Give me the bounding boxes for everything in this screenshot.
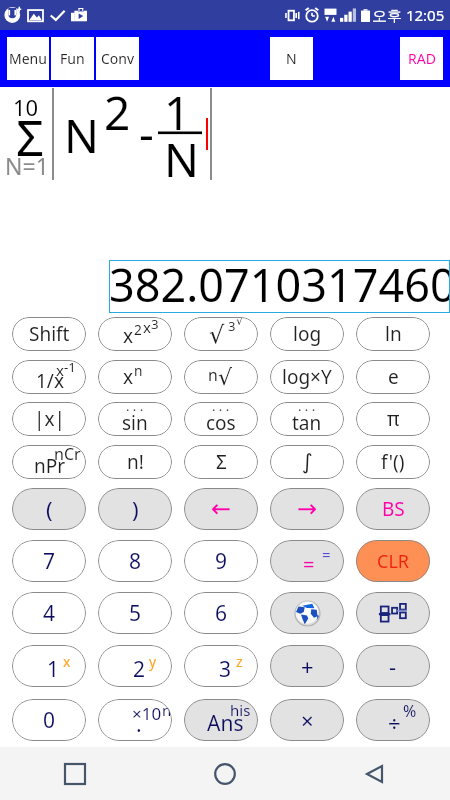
button[interactable]: . (98, 699, 172, 741)
button[interactable]: + (270, 645, 344, 687)
staticText: N=1 (5, 150, 49, 181)
staticText: Σ (16, 104, 45, 171)
staticText: sin (122, 410, 148, 436)
staticText: 5 (129, 599, 142, 628)
staticText: Σ (216, 449, 227, 475)
staticText: y (149, 652, 157, 671)
staticText: x (56, 360, 64, 380)
button[interactable]: ( (12, 488, 86, 530)
button[interactable]: Shift (12, 317, 86, 351)
button[interactable]: log (270, 317, 344, 351)
button[interactable] (270, 592, 344, 634)
staticText: x (63, 652, 71, 671)
staticText: cos (206, 410, 236, 436)
button[interactable]: ∫ (270, 445, 344, 479)
button[interactable]: N (270, 37, 313, 80)
staticText: BS (382, 496, 405, 522)
staticText: = (322, 544, 331, 564)
button[interactable]: nPr (12, 445, 86, 479)
button[interactable]: 8 (98, 540, 172, 582)
staticText: RAD (408, 49, 436, 68)
staticText: · · · (298, 402, 316, 419)
button[interactable]: × (270, 699, 344, 741)
staticText: f'() (381, 449, 405, 475)
staticText: 2 (133, 655, 146, 684)
staticText: CLR (377, 549, 410, 574)
staticText: Menu (9, 49, 47, 68)
button[interactable]: cos (184, 402, 258, 436)
button[interactable]: CLR (356, 540, 430, 582)
staticText: N (286, 49, 297, 68)
button[interactable]: x (98, 360, 172, 394)
staticText: Conv (101, 49, 135, 68)
staticText: 3 (219, 655, 232, 684)
button[interactable]: 9 (184, 540, 258, 582)
button[interactable]: 3 (184, 645, 258, 687)
button[interactable]: 4 (12, 592, 86, 634)
button[interactable]: Ans (184, 699, 258, 741)
staticText: ÷ (388, 708, 401, 738)
button[interactable]: 7 (12, 540, 86, 582)
staticText: 1 (47, 655, 60, 684)
staticText: log×Y (282, 364, 332, 390)
button[interactable]: Fun (51, 37, 94, 80)
staticText: ( (46, 494, 53, 524)
button[interactable]: Home (150, 747, 300, 800)
button[interactable]: π (356, 402, 430, 436)
button[interactable]: 1/x (12, 360, 86, 394)
button[interactable]: e (356, 360, 430, 394)
staticText: Ans (207, 709, 244, 738)
staticText: nCr (54, 445, 81, 465)
button[interactable]: log×Y (270, 360, 344, 394)
button[interactable]: Menu (7, 37, 49, 80)
button[interactable]: → (270, 488, 344, 530)
button[interactable]: 0 (12, 699, 86, 741)
button[interactable]: sin (98, 402, 172, 436)
button[interactable]: f'() (356, 445, 430, 479)
button[interactable]: ) (98, 488, 172, 530)
staticText: 3 (228, 317, 236, 335)
button[interactable]: |x| (12, 402, 86, 436)
button[interactable]: 1 (12, 645, 86, 687)
staticText: 4 (43, 599, 56, 628)
staticText: - (389, 651, 397, 681)
button[interactable]: RAD (400, 37, 443, 80)
button[interactable]: 2 (98, 645, 172, 687)
staticText: 7 (43, 547, 56, 576)
button[interactable]: Recent apps (0, 747, 150, 800)
button[interactable]: √ (184, 317, 258, 351)
staticText: 0 (43, 706, 56, 735)
button[interactable]: - (356, 645, 430, 687)
staticText: 382.0710317460 (109, 254, 450, 307)
button[interactable]: n! (98, 445, 172, 479)
button[interactable] (356, 592, 430, 634)
button[interactable]: ln (356, 317, 430, 351)
button[interactable]: 6 (184, 592, 258, 634)
button[interactable]: 5 (98, 592, 172, 634)
staticText: n (162, 700, 172, 720)
button[interactable]: x (98, 317, 172, 351)
button[interactable]: = (270, 540, 344, 582)
staticText: · · · (212, 402, 230, 419)
staticText: ×10 (132, 702, 162, 725)
button[interactable]: ÷ (356, 699, 430, 741)
button[interactable]: n (184, 360, 258, 394)
staticText: n (208, 364, 218, 386)
staticText: ) (132, 494, 139, 524)
staticText: ← (211, 495, 232, 523)
staticText: 1 (164, 81, 191, 144)
staticText: his (230, 700, 251, 720)
staticText: tan (292, 410, 322, 436)
staticText: |x| (34, 406, 65, 432)
button[interactable]: BS (356, 488, 430, 530)
button[interactable]: Σ (184, 445, 258, 479)
button[interactable]: Back (300, 747, 450, 800)
staticText: x (143, 317, 151, 337)
button[interactable]: Conv (96, 37, 139, 80)
staticText: √ (209, 321, 225, 349)
staticText: n! (127, 449, 144, 475)
button[interactable]: ← (184, 488, 258, 530)
staticText: z (236, 652, 243, 671)
staticText: π (387, 406, 400, 432)
button[interactable]: tan (270, 402, 344, 436)
